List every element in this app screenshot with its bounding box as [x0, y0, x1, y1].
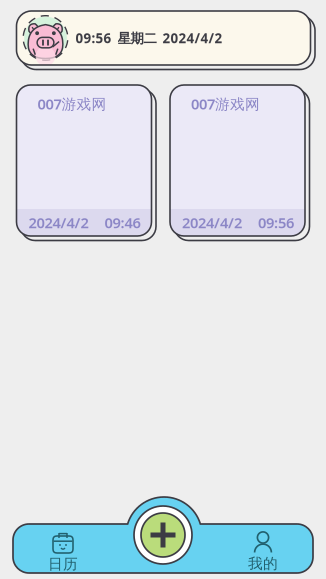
staticText: 007游戏网: [37, 94, 106, 113]
staticText: 2024/4/2 09:46: [28, 213, 140, 232]
button[interactable]: 09:56 星期二 2024/4/2: [16, 11, 316, 71]
button[interactable]: 日历: [13, 527, 113, 576]
button[interactable]: 007游戏网: [170, 85, 311, 242]
staticText: 09:56 星期二 2024/4/2: [75, 29, 222, 47]
button[interactable]: 我的: [213, 527, 313, 576]
staticText: 2024/4/2 09:56: [182, 213, 294, 232]
staticText: 我的: [248, 554, 278, 572]
staticText: 日历: [48, 555, 78, 573]
staticText: 007游戏网: [191, 94, 260, 113]
button[interactable]: 007游戏网: [16, 85, 157, 242]
button[interactable]: Add: [133, 505, 193, 565]
